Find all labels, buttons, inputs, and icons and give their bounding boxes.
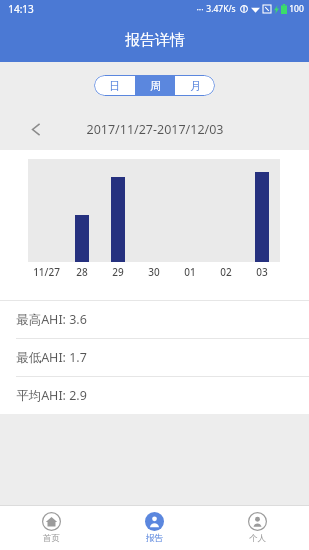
staticText: 03 <box>256 265 268 279</box>
button[interactable]: Previous period <box>22 115 50 143</box>
button[interactable]: 平均AHI: 2.9 <box>0 377 309 414</box>
staticText: 2017/11/27-2017/12/03 <box>86 121 224 138</box>
staticText: 月 <box>190 79 201 93</box>
button[interactable]: 周 <box>135 75 175 96</box>
staticText: 01 <box>184 265 196 279</box>
staticText: 日 <box>109 79 120 93</box>
staticText: 100 <box>289 3 304 15</box>
staticText: ··· <box>196 3 204 15</box>
button[interactable]: 个人 <box>206 506 309 550</box>
button[interactable]: 月 <box>175 75 215 96</box>
staticText: 30 <box>148 265 160 279</box>
button[interactable]: 最低AHI: 1.7 <box>0 339 309 376</box>
staticText: 最高AHI: 3.6 <box>16 311 87 328</box>
staticText: 28 <box>76 265 88 279</box>
button[interactable]: 报告 <box>103 506 206 550</box>
staticText: 首页 <box>43 533 60 544</box>
staticText: 3.47K/s <box>206 3 236 15</box>
staticText: 平均AHI: 2.9 <box>16 387 87 404</box>
staticText: 14:13 <box>8 2 34 16</box>
staticText: 11/27 <box>33 265 60 279</box>
staticText: 周 <box>150 79 161 93</box>
staticText: 报告 <box>146 533 163 544</box>
staticText: 报告详情 <box>125 31 185 50</box>
staticText: 个人 <box>249 533 266 544</box>
staticText: 02 <box>220 265 232 279</box>
button[interactable]: 日 <box>94 75 135 96</box>
button[interactable]: 首页 <box>0 506 103 550</box>
staticText: 29 <box>112 265 124 279</box>
button[interactable]: 最高AHI: 3.6 <box>0 301 309 338</box>
staticText: 最低AHI: 1.7 <box>16 349 87 366</box>
